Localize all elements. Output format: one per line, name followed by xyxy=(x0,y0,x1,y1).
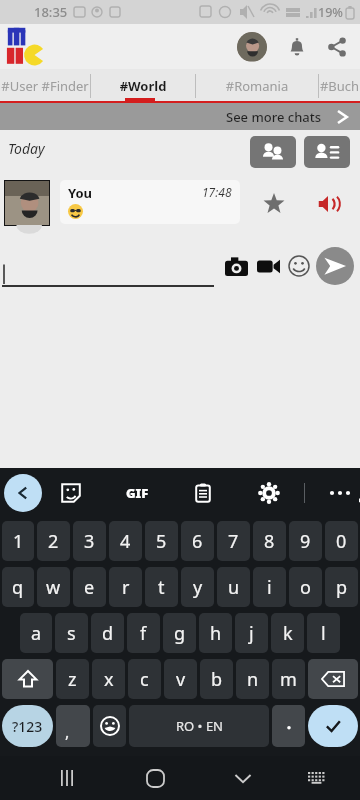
button[interactable]: Switch keyboard xyxy=(296,758,336,798)
staticText: You xyxy=(68,184,93,202)
button[interactable]: #Romania #Channel xyxy=(196,69,318,103)
button[interactable]: 3 xyxy=(73,521,106,561)
button[interactable]: m xyxy=(272,659,305,699)
staticText: x xyxy=(104,667,114,692)
button[interactable]: c xyxy=(128,659,161,699)
staticText: #Romania #Channel xyxy=(196,77,318,95)
button[interactable]: You xyxy=(60,180,240,224)
staticText: g xyxy=(174,621,186,646)
button[interactable]: k xyxy=(271,613,304,653)
staticText: 8 xyxy=(264,529,275,554)
button[interactable]: a xyxy=(20,613,52,653)
button[interactable]: Share xyxy=(324,34,350,60)
button[interactable]: #Buchare xyxy=(319,69,360,103)
staticText: k xyxy=(283,621,293,646)
button[interactable]: Send xyxy=(316,247,354,285)
button[interactable]: p xyxy=(325,567,358,607)
button[interactable]: Favourite xyxy=(258,188,290,220)
button[interactable]: v xyxy=(164,659,197,699)
staticText: #Buchare xyxy=(319,77,360,95)
button[interactable]: l xyxy=(307,613,340,653)
button[interactable]: 4 xyxy=(109,521,142,561)
button[interactable] xyxy=(272,705,305,747)
button[interactable]: ?123 xyxy=(2,705,53,747)
button[interactable]: 6 xyxy=(181,521,214,561)
button[interactable]: Sound xyxy=(312,188,344,220)
staticText: 0 xyxy=(336,529,347,554)
staticText: e xyxy=(84,575,95,600)
button[interactable]: f xyxy=(127,613,160,653)
button[interactable]: u xyxy=(217,567,250,607)
button[interactable]: Emoji xyxy=(284,251,314,281)
button[interactable]: 8 xyxy=(253,521,286,561)
button[interactable] xyxy=(2,258,214,288)
staticText: 9 xyxy=(300,529,311,554)
button[interactable]: Profile xyxy=(237,32,267,62)
staticText: c xyxy=(140,667,149,692)
button[interactable]: Home xyxy=(135,758,175,798)
button[interactable]: o xyxy=(289,567,322,607)
button[interactable]: Camera xyxy=(221,251,251,281)
button[interactable]: Contact card xyxy=(304,136,350,168)
button[interactable]: 0 xyxy=(325,521,358,561)
button[interactable]: h xyxy=(199,613,232,653)
button[interactable]: t xyxy=(145,567,178,607)
staticText: y xyxy=(193,575,203,600)
staticText: , xyxy=(65,721,70,743)
staticText: 3 xyxy=(84,529,95,554)
staticText: f xyxy=(140,621,147,646)
button[interactable]: #User #Finder xyxy=(0,69,90,103)
staticText: 19% xyxy=(318,4,343,21)
button[interactable]: g xyxy=(163,613,196,653)
button[interactable]: y xyxy=(181,567,214,607)
staticText: 18:35 xyxy=(34,3,68,21)
button[interactable]: More xyxy=(325,478,355,508)
button[interactable]: x xyxy=(92,659,125,699)
button[interactable]: q xyxy=(2,567,34,607)
button[interactable]: GIF xyxy=(122,478,152,508)
staticText: See more chats xyxy=(226,108,322,126)
staticText: n xyxy=(247,667,259,692)
button[interactable]: Notifications xyxy=(284,34,310,60)
button[interactable]: Settings xyxy=(254,478,284,508)
staticText: p xyxy=(336,575,348,600)
button[interactable]: d xyxy=(91,613,124,653)
staticText: z xyxy=(68,667,77,692)
button[interactable]: s xyxy=(55,613,88,653)
button[interactable]: Stickers xyxy=(56,478,86,508)
button[interactable]: Recents xyxy=(47,758,87,798)
staticText: a xyxy=(31,621,42,646)
button[interactable]: 5 xyxy=(145,521,178,561)
button[interactable]: z xyxy=(56,659,89,699)
button[interactable]: , xyxy=(56,705,90,747)
button[interactable]: See more chats xyxy=(0,103,360,130)
button[interactable]: Group members xyxy=(250,136,296,168)
button[interactable]: w xyxy=(37,567,70,607)
staticText: 7 xyxy=(228,529,239,554)
button[interactable]: j xyxy=(235,613,268,653)
button[interactable]: Backspace xyxy=(308,659,358,699)
button[interactable]: 7 xyxy=(217,521,250,561)
button[interactable]: Shift xyxy=(2,659,53,699)
button[interactable]: 9 xyxy=(289,521,322,561)
staticText: r xyxy=(122,575,130,600)
staticText: h xyxy=(210,621,222,646)
staticText: j xyxy=(249,621,254,646)
button[interactable]: Clipboard xyxy=(188,478,218,508)
button[interactable]: r xyxy=(109,567,142,607)
staticText: ?123 xyxy=(12,717,43,736)
button[interactable]: Enter xyxy=(308,705,358,747)
button[interactable]: #World #Channel xyxy=(91,69,195,103)
button[interactable]: Emoji xyxy=(93,705,126,747)
button[interactable]: 2 xyxy=(37,521,70,561)
button[interactable]: e xyxy=(73,567,106,607)
button[interactable]: Hide keyboard xyxy=(223,758,263,798)
button[interactable]: n xyxy=(236,659,269,699)
button[interactable]: 1 xyxy=(2,521,34,561)
button[interactable]: Video xyxy=(253,251,283,281)
button[interactable]: i xyxy=(253,567,286,607)
button[interactable]: Back xyxy=(4,474,42,512)
staticText: #User #Finder xyxy=(1,77,89,95)
button[interactable]: b xyxy=(200,659,233,699)
button[interactable]: RO • EN xyxy=(129,705,269,747)
